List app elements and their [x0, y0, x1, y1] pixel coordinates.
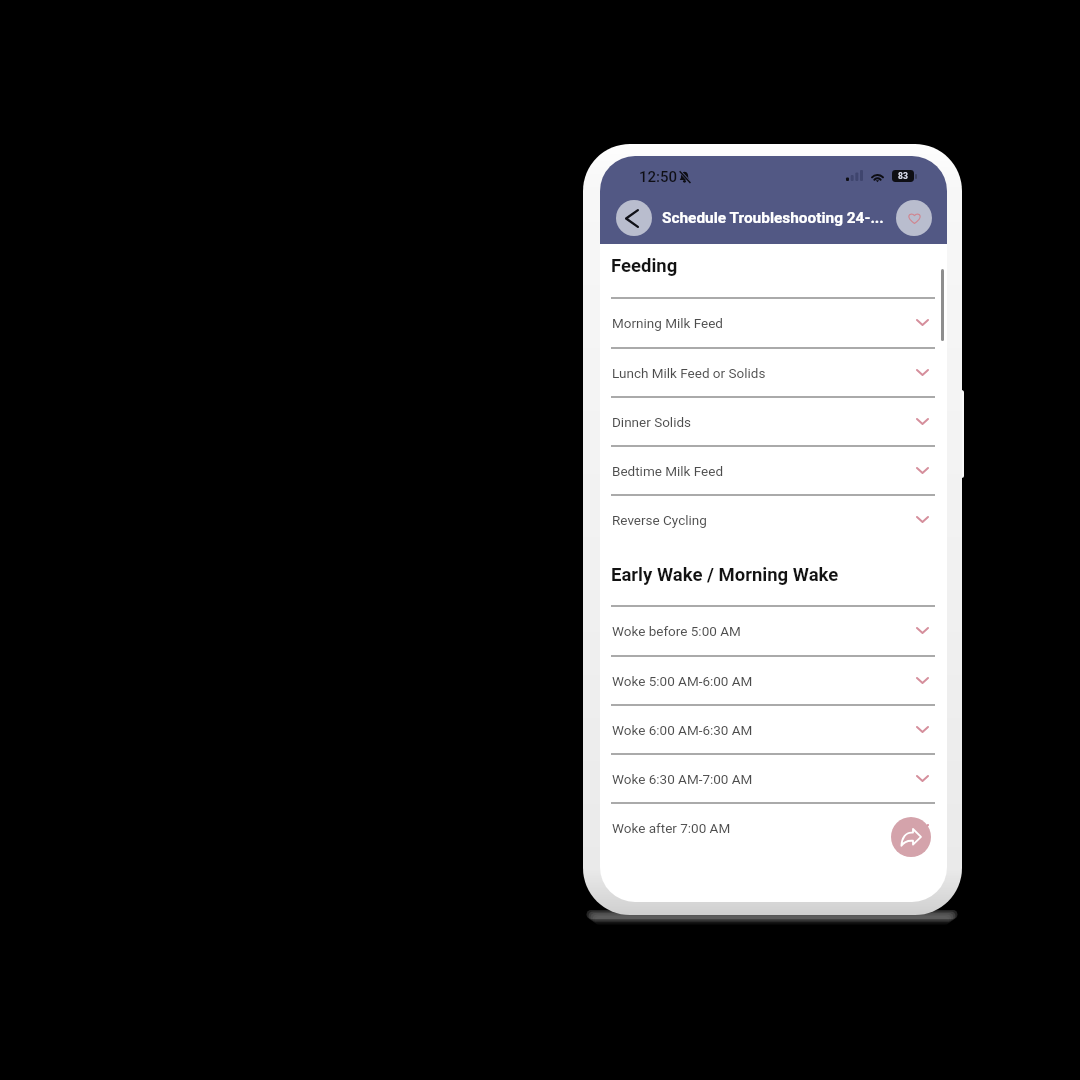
button[interactable]: Dinner Solids: [600, 396, 947, 445]
staticText: Woke before 5:00 AM: [612, 623, 741, 639]
staticText: Woke 6:00 AM-6:30 AM: [612, 722, 753, 738]
staticText: 12:50: [639, 168, 678, 186]
button[interactable]: Woke before 5:00 AM: [600, 605, 947, 654]
button[interactable]: Woke 5:00 AM-6:00 AM: [600, 655, 947, 704]
button[interactable]: Woke 6:30 AM-7:00 AM: [600, 753, 947, 802]
button[interactable]: Morning Milk Feed: [600, 297, 947, 346]
button[interactable]: Share: [891, 817, 931, 857]
staticText: Woke 6:30 AM-7:00 AM: [612, 771, 753, 787]
staticText: Dinner Solids: [612, 414, 691, 430]
staticText: Woke 5:00 AM-6:00 AM: [612, 673, 753, 689]
button[interactable]: Woke after 7:00 AM: [600, 802, 947, 851]
staticText: 83: [898, 171, 908, 181]
staticText: Lunch Milk Feed or Solids: [612, 365, 766, 381]
button[interactable]: Back: [616, 200, 652, 236]
button[interactable]: Woke 6:00 AM-6:30 AM: [600, 704, 947, 753]
staticText: Feeding: [611, 255, 678, 277]
staticText: Schedule Troubleshooting 24-...: [662, 209, 884, 227]
button[interactable]: Bedtime Milk Feed: [600, 445, 947, 494]
button[interactable]: Favourite: [896, 200, 932, 236]
staticText: Bedtime Milk Feed: [612, 463, 724, 479]
staticText: Woke after 7:00 AM: [612, 820, 731, 836]
button[interactable]: Feeding: [611, 255, 678, 281]
staticText: Early Wake / Morning Wake: [611, 564, 839, 586]
staticText: Morning Milk Feed: [612, 315, 723, 331]
staticText: Reverse Cycling: [612, 512, 707, 528]
button[interactable]: Lunch Milk Feed or Solids: [600, 347, 947, 396]
button[interactable]: Reverse Cycling: [600, 494, 947, 543]
button[interactable]: Early Wake / Morning Wake: [611, 564, 839, 590]
